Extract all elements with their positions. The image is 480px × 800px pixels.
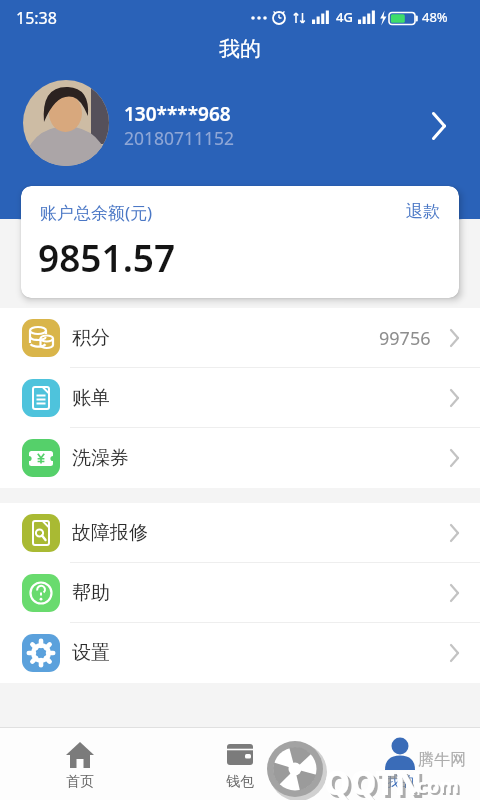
button[interactable]: 首页 [0, 728, 160, 800]
staticText: 我的 [386, 773, 414, 791]
staticText: 设置 [72, 641, 110, 665]
staticText: QQTN [327, 763, 425, 800]
button[interactable]: 退款 [406, 201, 440, 222]
staticText: QQTN [324, 760, 422, 800]
staticText: 积分 [72, 326, 110, 350]
button[interactable]: 我的 [320, 728, 480, 800]
staticText: 腾牛网 [418, 750, 466, 770]
staticText: .com [411, 772, 459, 799]
staticText: .com [413, 774, 461, 800]
button[interactable]: 钱包 [160, 728, 320, 800]
staticText: 钱包 [226, 773, 254, 791]
staticText: 9851.57 [38, 232, 176, 282]
staticText: 48% [422, 8, 448, 26]
staticText: 首页 [66, 773, 94, 791]
staticText: 洗澡券 [72, 446, 129, 470]
staticText: 账单 [72, 386, 110, 410]
staticText: 20180711152 [124, 126, 235, 150]
staticText: 99756 [379, 326, 431, 351]
staticText: 130****968 [124, 101, 231, 127]
staticText: 15:38 [16, 7, 57, 29]
staticText: 我的 [219, 36, 261, 62]
staticText: 帮助 [72, 581, 110, 605]
button[interactable]: 设置 [0, 623, 480, 683]
button[interactable]: 帮助 [0, 563, 480, 623]
button[interactable]: 账户总余额(元) [21, 186, 459, 298]
button[interactable]: 洗澡券 [0, 428, 480, 488]
staticText: 账户总余额(元) [40, 201, 153, 224]
button[interactable] [432, 112, 448, 140]
staticText: 4G [336, 8, 353, 26]
button[interactable] [23, 80, 109, 166]
staticText: 故障报修 [72, 521, 148, 545]
button[interactable]: 故障报修 [0, 503, 480, 563]
button[interactable]: 积分 [0, 308, 480, 368]
button[interactable]: 账单 [0, 368, 480, 428]
